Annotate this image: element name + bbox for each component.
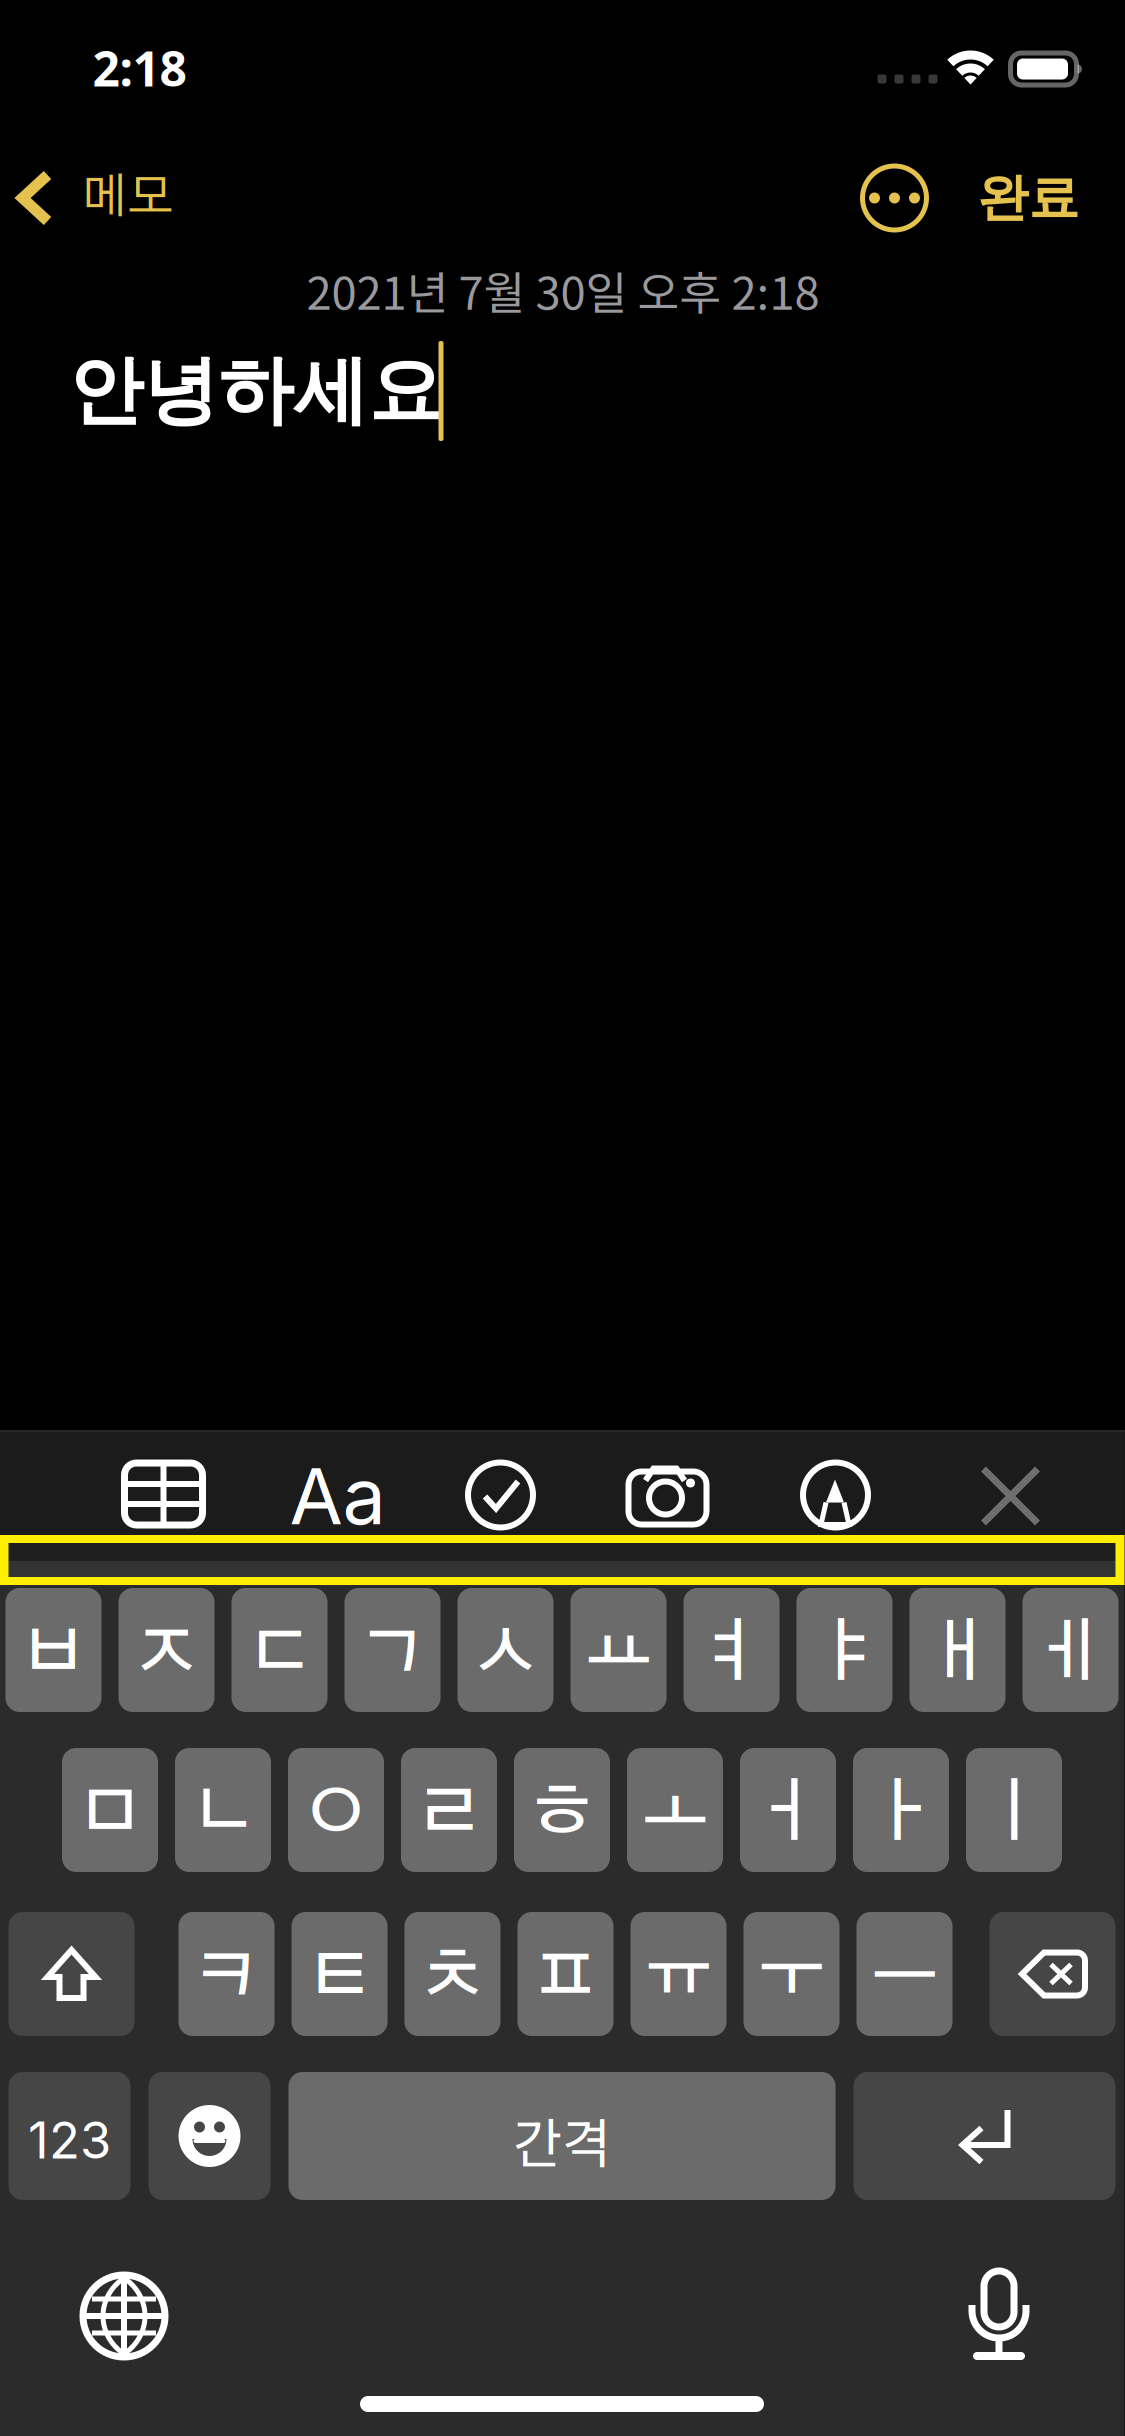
staticText: Aa — [289, 1449, 385, 1543]
button[interactable]: ㅓ — [740, 1748, 836, 1872]
button[interactable]: Delete — [989, 1912, 1115, 2036]
staticText: ㅔ — [1036, 1619, 1105, 1689]
button[interactable]: Return — [853, 2072, 1115, 2200]
staticText: ㅊ — [418, 1943, 487, 2013]
button[interactable]: Camera — [606, 1440, 728, 1546]
button[interactable]: ㅎ — [514, 1748, 610, 1872]
button[interactable]: ㅔ — [1022, 1588, 1118, 1712]
button[interactable]: ㅅ — [457, 1588, 553, 1712]
button[interactable]: ㅑ — [796, 1588, 892, 1712]
button[interactable]: ㅕ — [683, 1588, 779, 1712]
staticText: ㅎ — [527, 1779, 596, 1849]
button[interactable]: Table — [102, 1441, 224, 1547]
staticText: ㅐ — [923, 1619, 992, 1689]
button[interactable]: ㄴ — [175, 1748, 271, 1872]
button[interactable]: ㄱ — [344, 1588, 440, 1712]
button[interactable]: Switch keyboard — [63, 2255, 185, 2377]
staticText: ㅈ — [132, 1619, 201, 1689]
button[interactable]: Dictate — [944, 2248, 1056, 2380]
staticText: ㅌ — [305, 1943, 374, 2013]
staticText: 2:18 — [92, 35, 186, 101]
staticText: 완료 — [977, 166, 1079, 230]
staticText: ㄱ — [358, 1619, 427, 1689]
staticText: ㅡ — [870, 1943, 939, 2013]
staticText: ㅛ — [584, 1619, 653, 1689]
button[interactable]: ㅠ — [630, 1912, 726, 2036]
staticText: 2021년 7월 30일 오후 2:18 — [306, 257, 819, 323]
button[interactable]: Close keyboard — [957, 1443, 1063, 1549]
button[interactable]: ㅍ — [517, 1912, 613, 2036]
button[interactable]: 123 — [8, 2072, 130, 2200]
button[interactable]: Markup — [781, 1440, 890, 1549]
button[interactable]: ㅣ — [966, 1748, 1062, 1872]
staticText: ㅂ — [19, 1619, 88, 1689]
staticText: 간격 — [513, 2101, 611, 2179]
staticText: ㅠ — [644, 1943, 713, 2013]
button[interactable]: ㅐ — [909, 1588, 1005, 1712]
button[interactable]: ㅇ — [288, 1748, 384, 1872]
button[interactable]: ㅊ — [404, 1912, 500, 2036]
staticText: ㄷ — [245, 1619, 314, 1689]
button[interactable]: Emoji — [148, 2072, 270, 2200]
button[interactable]: More options — [846, 150, 942, 246]
button[interactable]: ㅗ — [627, 1748, 723, 1872]
button[interactable]: ㅌ — [291, 1912, 387, 2036]
staticText: ㅇ — [301, 1779, 370, 1849]
button[interactable]: ㅛ — [570, 1588, 666, 1712]
staticText: ㅏ — [866, 1779, 935, 1849]
staticText: ㅋ — [192, 1943, 261, 2013]
button[interactable]: Shift — [8, 1912, 134, 2036]
button[interactable]: ㅡ — [856, 1912, 952, 2036]
button[interactable]: ㄷ — [231, 1588, 327, 1712]
staticText: ㄴ — [188, 1779, 257, 1849]
button[interactable]: ㄹ — [401, 1748, 497, 1872]
button[interactable]: ㅈ — [118, 1588, 214, 1712]
button[interactable]: Text format — [267, 1427, 407, 1565]
staticText: ㅕ — [697, 1619, 766, 1689]
button[interactable]: ㅜ — [743, 1912, 839, 2036]
button[interactable]: ㅂ — [5, 1588, 101, 1712]
button[interactable]: 메모 — [0, 150, 197, 246]
staticText: ㅑ — [810, 1619, 879, 1689]
button[interactable]: ㅁ — [62, 1748, 158, 1872]
staticText: ㅁ — [75, 1779, 144, 1849]
staticText: 123 — [28, 2109, 111, 2171]
staticText: 안녕하세요 — [68, 344, 443, 438]
button[interactable]: 간격 — [288, 2072, 835, 2200]
staticText: ㄹ — [414, 1779, 483, 1849]
staticText: ㅍ — [531, 1943, 600, 2013]
button[interactable]: ㅋ — [178, 1912, 274, 2036]
staticText: ㅅ — [471, 1619, 540, 1689]
staticText: ㅗ — [640, 1779, 709, 1849]
staticText: ㅣ — [979, 1779, 1048, 1849]
button[interactable]: 완료 — [953, 150, 1103, 246]
button[interactable]: Checklist — [446, 1440, 555, 1549]
button[interactable]: ㅏ — [853, 1748, 949, 1872]
staticText: ㅜ — [757, 1943, 826, 2013]
staticText: ㅓ — [753, 1779, 822, 1849]
staticText: 메모 — [81, 174, 173, 222]
